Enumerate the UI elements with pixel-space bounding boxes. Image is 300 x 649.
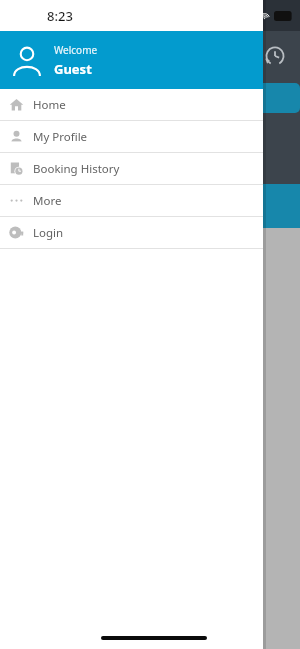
- staticText: My Profile: [33, 129, 88, 145]
- staticText: Guest: [54, 60, 92, 78]
- button[interactable]: More: [0, 185, 263, 217]
- staticText: 8:23: [47, 7, 73, 25]
- button[interactable]: Booking History: [0, 153, 263, 185]
- button[interactable]: My Profile: [0, 121, 263, 153]
- staticText: Home: [33, 97, 66, 113]
- staticText: Login: [33, 225, 64, 241]
- button[interactable]: Home: [0, 89, 263, 121]
- button[interactable]: Welcome: [0, 31, 263, 89]
- staticText: Booking History: [33, 161, 120, 177]
- staticText: M: [4, 133, 30, 170]
- button[interactable]: History: [262, 43, 288, 69]
- button[interactable]: [8, 83, 300, 113]
- staticText: On: [4, 236, 17, 248]
- staticText: Welcome: [54, 43, 98, 57]
- staticText: More: [33, 193, 62, 209]
- button[interactable]: Login: [0, 217, 263, 249]
